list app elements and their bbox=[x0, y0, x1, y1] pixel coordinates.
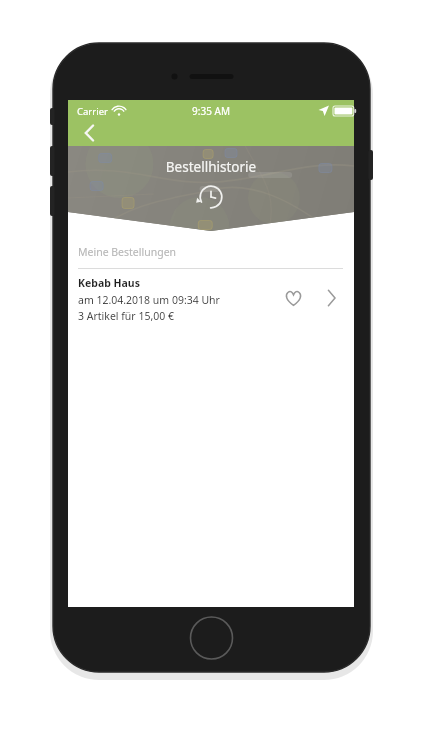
staticText: Bestellhistorie bbox=[68, 158, 354, 176]
staticText: am 12.04.2018 um 09:34 Uhr bbox=[78, 293, 220, 307]
staticText: Carrier bbox=[77, 105, 108, 118]
staticText: 3 Artikel für 15,00 € bbox=[78, 309, 174, 323]
staticText: Kebab Haus bbox=[78, 276, 140, 290]
button[interactable]: Kebab Haus bbox=[68, 269, 354, 327]
staticText: 9:35 AM bbox=[68, 104, 354, 118]
button[interactable]: Favorite bbox=[276, 281, 310, 315]
button[interactable]: Back bbox=[72, 120, 108, 146]
button[interactable]: Open order details bbox=[316, 283, 346, 313]
staticText: Meine Bestellungen bbox=[78, 245, 177, 259]
